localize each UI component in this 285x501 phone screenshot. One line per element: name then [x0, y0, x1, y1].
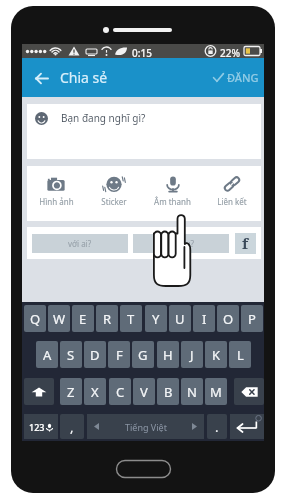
staticText: F: [116, 346, 123, 364]
button[interactable]: O: [217, 305, 239, 332]
staticText: G: [138, 346, 148, 364]
staticText: E: [79, 310, 87, 328]
button[interactable]: B: [157, 378, 179, 405]
button[interactable]: W: [48, 305, 70, 332]
button[interactable]: Y: [145, 305, 167, 332]
staticText: Âm thanh: [154, 196, 191, 207]
staticText: .: [215, 418, 219, 436]
button[interactable]: 123: [24, 414, 58, 439]
button[interactable]: K: [205, 341, 227, 368]
staticText: Sticker: [101, 196, 127, 207]
staticText: Tiếng Việt: [125, 421, 167, 433]
staticText: A: [43, 346, 52, 364]
staticText: ĐĂNG: [227, 70, 259, 85]
staticText: R: [103, 310, 112, 328]
button[interactable]: ,: [60, 414, 84, 439]
staticText: 22%: [220, 46, 240, 60]
staticText: Bạn đang nghĩ gì?: [61, 111, 146, 125]
staticText: ,: [70, 418, 74, 436]
staticText: D: [90, 346, 100, 364]
button[interactable]: ở đâu?: [133, 234, 229, 253]
staticText: C: [116, 383, 125, 401]
staticText: X: [91, 383, 99, 401]
button[interactable]: H: [157, 341, 179, 368]
staticText: Hình ảnh: [39, 196, 74, 207]
button[interactable]: Bạn đang nghĩ gì?: [27, 104, 261, 159]
staticText: f: [242, 233, 249, 253]
button[interactable]: Tiếng Việt: [87, 414, 204, 439]
staticText: N: [187, 383, 197, 401]
button[interactable]: T: [120, 305, 142, 332]
staticText: Chia sẻ: [60, 68, 108, 87]
staticText: L: [237, 346, 244, 364]
button[interactable]: với ai?: [32, 234, 128, 253]
staticText: I: [202, 310, 207, 328]
button[interactable]: Back: [28, 65, 54, 91]
staticText: 123: [29, 421, 45, 433]
staticText: M: [210, 383, 222, 401]
staticText: K: [212, 346, 221, 364]
staticText: ở đâu?: [169, 238, 194, 249]
staticText: P: [248, 310, 256, 328]
button[interactable]: X: [84, 378, 106, 405]
button[interactable]: G: [132, 341, 154, 368]
staticText: 0:15: [132, 46, 152, 60]
staticText: với ai?: [68, 238, 92, 249]
button[interactable]: S: [60, 341, 82, 368]
button[interactable]: Sticker: [85, 166, 143, 221]
button[interactable]: Liên kết: [202, 166, 261, 221]
button[interactable]: E: [72, 305, 94, 332]
button[interactable]: U: [169, 305, 191, 332]
button[interactable]: D: [84, 341, 106, 368]
button[interactable]: I: [193, 305, 215, 332]
staticText: Y: [152, 310, 160, 328]
staticText: O: [223, 310, 234, 328]
button[interactable]: .: [207, 414, 227, 439]
staticText: Liên kết: [217, 196, 247, 207]
button[interactable]: A: [36, 341, 58, 368]
button[interactable]: Hình ảnh: [27, 166, 85, 221]
button[interactable]: V: [133, 378, 155, 405]
button[interactable]: Z: [60, 378, 82, 405]
button[interactable]: Enter: [230, 414, 264, 439]
staticText: T: [127, 310, 135, 328]
button[interactable]: Facebook: [235, 233, 256, 254]
staticText: S: [67, 346, 75, 364]
button[interactable]: Backspace: [234, 378, 264, 405]
staticText: Q: [30, 310, 41, 328]
button[interactable]: ĐĂNG: [211, 64, 261, 91]
button[interactable]: Âm thanh: [143, 166, 202, 221]
button[interactable]: L: [229, 341, 251, 368]
button[interactable]: J: [181, 341, 203, 368]
staticText: V: [140, 383, 148, 401]
button[interactable]: R: [96, 305, 118, 332]
staticText: H: [163, 346, 173, 364]
button[interactable]: F: [108, 341, 130, 368]
button[interactable]: N: [181, 378, 203, 405]
button[interactable]: Shift: [24, 378, 54, 405]
staticText: Z: [67, 383, 75, 401]
button[interactable]: Q: [24, 305, 46, 332]
button[interactable]: P: [241, 305, 263, 332]
staticText: W: [53, 310, 66, 328]
staticText: J: [190, 346, 194, 364]
button[interactable]: M: [205, 378, 227, 405]
button[interactable]: C: [109, 378, 131, 405]
staticText: B: [164, 383, 173, 401]
staticText: U: [175, 310, 185, 328]
